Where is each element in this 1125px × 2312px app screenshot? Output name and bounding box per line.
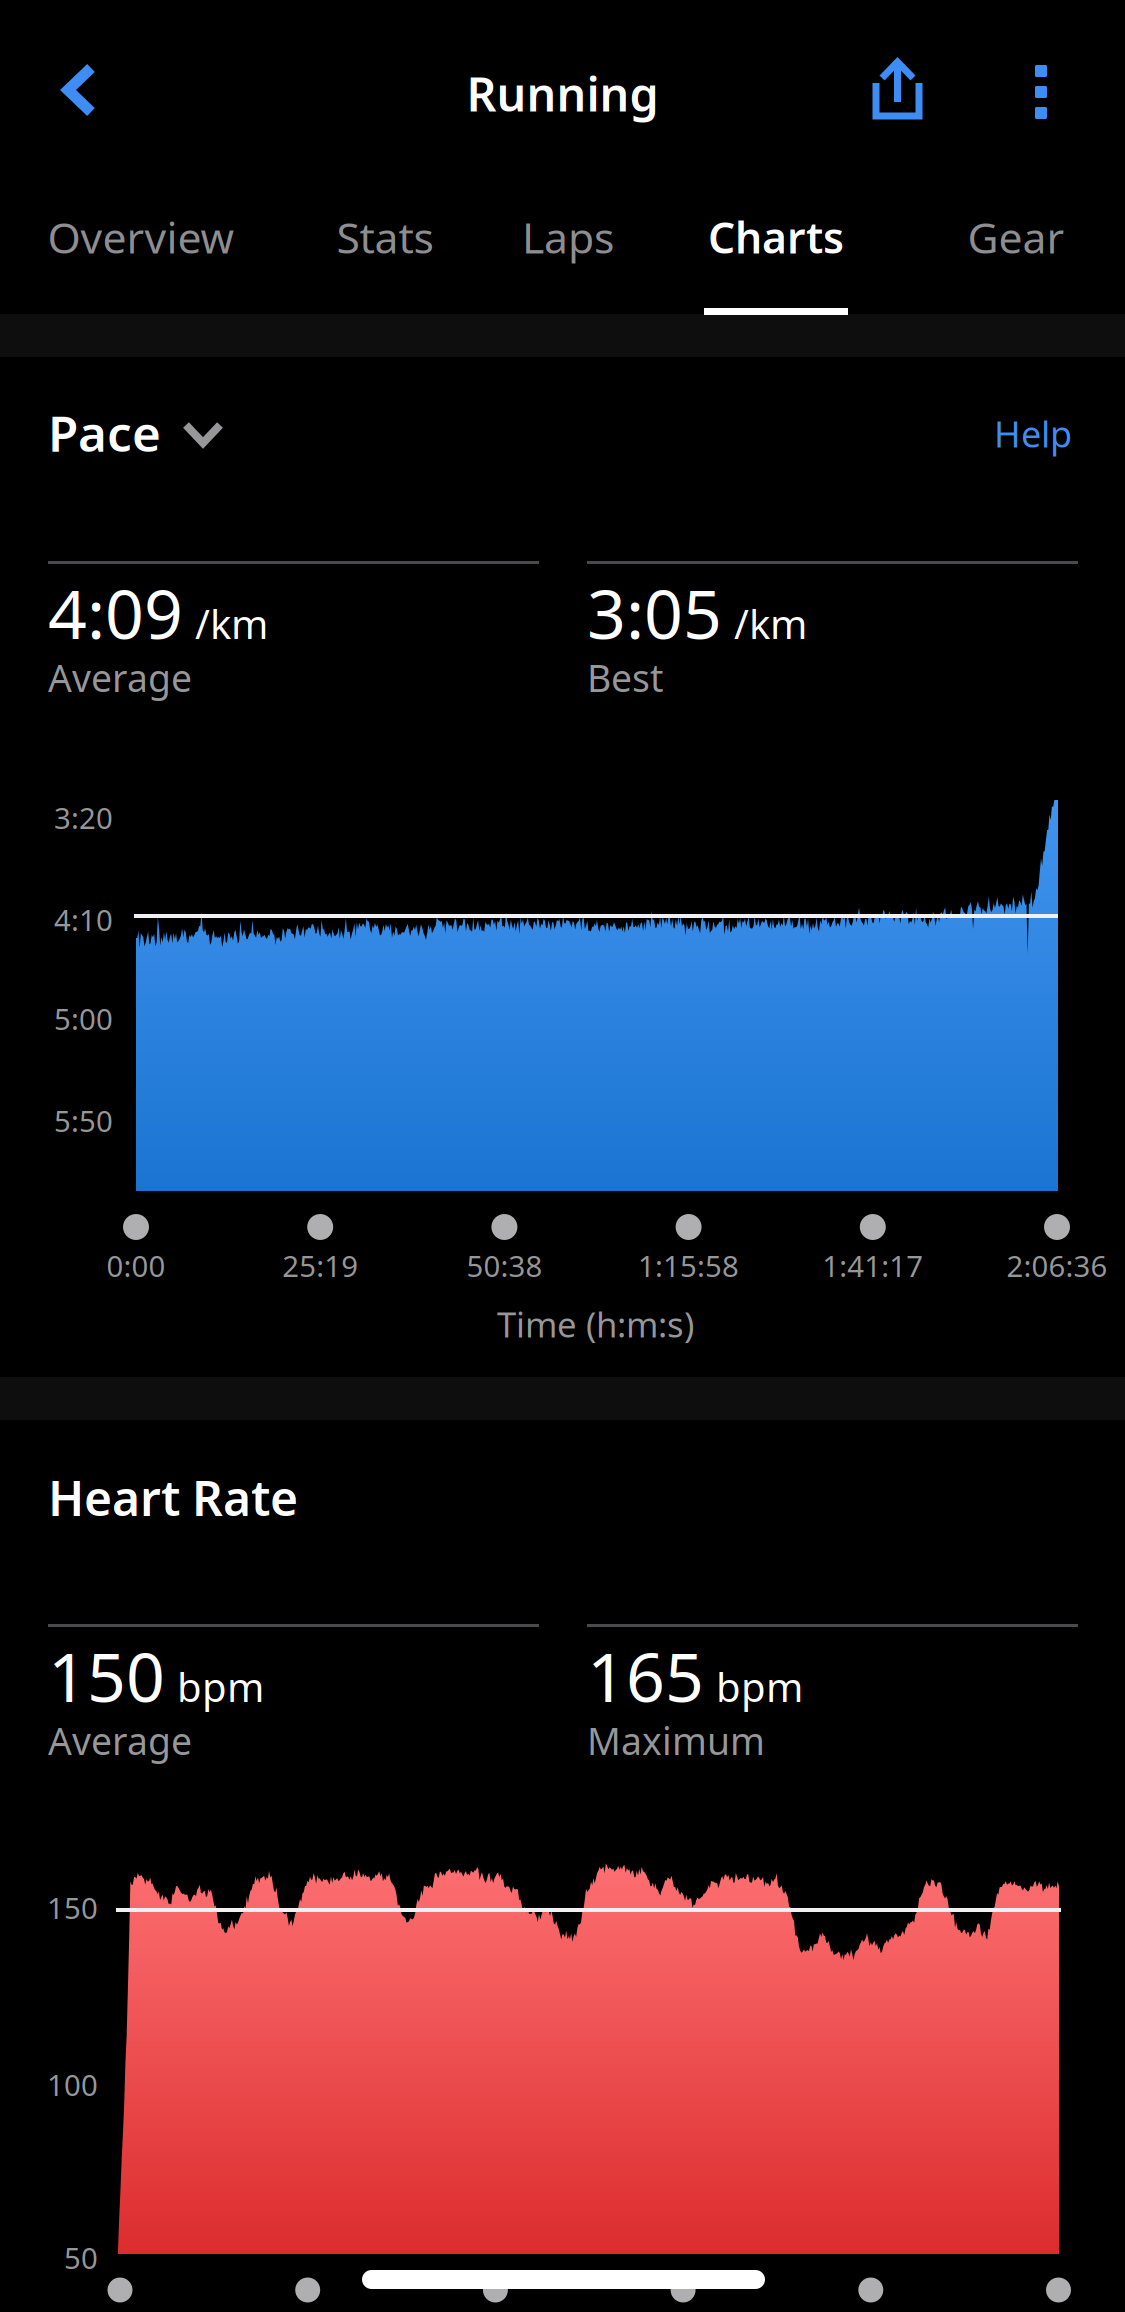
button[interactable]: Pace (44, 384, 284, 480)
staticText: 50 (64, 2238, 98, 2277)
button[interactable]: Help (946, 384, 1112, 480)
staticText: Overview (47, 209, 234, 265)
staticText: 0:00 (106, 1246, 165, 1285)
staticText: Average (48, 653, 192, 702)
staticText: 25:19 (282, 1246, 358, 1285)
button[interactable]: Overview (28, 168, 253, 313)
staticText: 4:09 (48, 567, 183, 658)
staticText: Help (994, 410, 1072, 457)
staticText: Best (587, 653, 663, 702)
staticText: bpm (177, 1660, 264, 1713)
staticText: 3:20 (54, 798, 113, 837)
button[interactable]: Laps (455, 168, 680, 313)
staticText: 150 (48, 1630, 165, 1721)
staticText: 165 (587, 1630, 704, 1721)
staticText: /km (734, 597, 807, 650)
staticText: /km (195, 597, 268, 650)
staticText: 5:50 (54, 1101, 113, 1140)
staticText: 4:10 (54, 900, 113, 939)
staticText: Time (h:m:s) (497, 1301, 694, 1347)
staticText: Heart Rate (48, 1466, 298, 1529)
button[interactable]: Gear (903, 168, 1125, 313)
staticText: Stats (336, 209, 433, 265)
staticText: 150 (47, 1888, 98, 1927)
staticText: Maximum (587, 1716, 765, 1765)
staticText: bpm (716, 1660, 803, 1713)
staticText: Running (466, 62, 658, 124)
staticText: 100 (47, 2065, 98, 2104)
staticText: 3:05 (587, 567, 722, 658)
staticText: Average (48, 1716, 192, 1765)
button[interactable]: Back (0, 0, 150, 168)
staticText: 2:06:36 (1006, 1246, 1107, 1285)
button[interactable]: Stats (272, 168, 497, 313)
staticText: Charts (708, 209, 844, 265)
staticText: Pace (48, 400, 161, 465)
staticText: 5:00 (54, 999, 113, 1038)
staticText: Gear (967, 209, 1064, 265)
button[interactable]: Share (837, 0, 965, 168)
button[interactable]: Charts (663, 168, 888, 313)
staticText: 50:38 (466, 1246, 542, 1285)
staticText: Laps (522, 209, 614, 265)
staticText: 1:15:58 (638, 1246, 739, 1285)
button[interactable]: More options (983, 0, 1099, 168)
staticText: 1:41:17 (822, 1246, 923, 1285)
